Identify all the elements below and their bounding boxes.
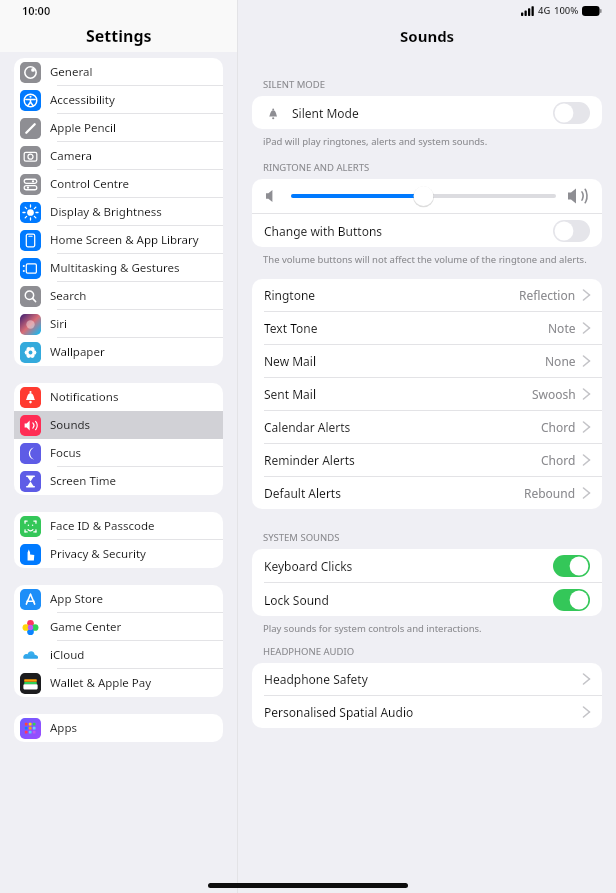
staticText: Default Alerts <box>264 485 341 501</box>
button[interactable]: Silent Mode <box>252 96 602 129</box>
staticText: iPad will play ringtones, alerts and sys… <box>263 135 488 148</box>
staticText: Swoosh <box>532 386 576 402</box>
button[interactable]: Apple Pencil <box>14 114 223 142</box>
button[interactable]: Ringtone <box>252 279 602 311</box>
staticText: 100% <box>554 4 579 17</box>
staticText: Wallpaper <box>50 344 105 360</box>
staticText: Reflection <box>519 287 576 303</box>
staticText: Screen Time <box>50 473 117 489</box>
button[interactable]: Notifications <box>14 383 223 411</box>
staticText: Home Screen & App Library <box>50 232 199 248</box>
staticText: Wallet & Apple Pay <box>50 675 152 691</box>
button[interactable]: Wallpaper <box>14 338 223 366</box>
staticText: Note <box>548 320 576 336</box>
button[interactable]: Camera <box>14 142 223 170</box>
staticText: Game Center <box>50 619 122 635</box>
button[interactable]: Apps <box>14 714 223 742</box>
staticText: Headphone Safety <box>264 671 368 687</box>
button[interactable]: Game Center <box>14 613 223 641</box>
staticText: Sounds <box>50 417 91 433</box>
staticText: Multitasking & Gestures <box>50 260 180 276</box>
staticText: Face ID & Passcode <box>50 518 155 534</box>
staticText: Search <box>50 288 87 304</box>
button[interactable]: Wallet & Apple Pay <box>14 669 223 697</box>
button[interactable]: Face ID & Passcode <box>14 512 223 540</box>
button[interactable]: App Store <box>14 585 223 613</box>
staticText: Ringtone <box>264 287 316 303</box>
button[interactable]: Search <box>14 282 223 310</box>
staticText: New Mail <box>264 353 317 369</box>
staticText: Calendar Alerts <box>264 419 351 435</box>
staticText: Chord <box>541 452 576 468</box>
button[interactable]: Focus <box>14 439 223 467</box>
button[interactable]: Accessibility <box>14 86 223 114</box>
staticText: The volume buttons will not affect the v… <box>263 253 587 266</box>
button[interactable]: Display & Brightness <box>14 198 223 226</box>
staticText: Play sounds for system controls and inte… <box>263 622 482 635</box>
staticText: Reminder Alerts <box>264 452 355 468</box>
button[interactable]: Calendar Alerts <box>252 411 602 443</box>
button[interactable]: Default Alerts <box>252 477 602 509</box>
button[interactable]: Headphone Safety <box>252 663 602 695</box>
staticText: Focus <box>50 445 82 461</box>
staticText: RINGTONE AND ALERTS <box>263 161 370 174</box>
button[interactable]: Change with Buttons <box>252 214 602 247</box>
staticText: Siri <box>50 316 67 332</box>
button[interactable]: iCloud <box>14 641 223 669</box>
staticText: General <box>50 64 93 80</box>
button[interactable]: Lock Sound <box>252 583 602 616</box>
staticText: 4G <box>538 4 551 17</box>
button[interactable]: General <box>14 58 223 86</box>
staticText: Accessibility <box>50 92 115 108</box>
button[interactable]: Home Screen & App Library <box>14 226 223 254</box>
button[interactable]: Sounds <box>14 411 223 439</box>
staticText: Sounds <box>400 26 455 46</box>
button[interactable]: Text Tone <box>252 312 602 344</box>
staticText: Keyboard Clicks <box>264 558 353 574</box>
staticText: Rebound <box>524 485 576 501</box>
staticText: HEADPHONE AUDIO <box>263 645 355 658</box>
staticText: Camera <box>50 148 92 164</box>
staticText: Apps <box>50 720 78 736</box>
button[interactable]: Personalised Spatial Audio <box>252 696 602 728</box>
button[interactable]: Siri <box>14 310 223 338</box>
staticText: Display & Brightness <box>50 204 162 220</box>
button[interactable]: Reminder Alerts <box>252 444 602 476</box>
button[interactable]: Keyboard Clicks <box>252 549 602 582</box>
staticText: None <box>545 353 576 369</box>
staticText: SYSTEM SOUNDS <box>263 531 340 544</box>
staticText: Personalised Spatial Audio <box>264 704 414 720</box>
staticText: Apple Pencil <box>50 120 116 136</box>
button[interactable]: Sent Mail <box>252 378 602 410</box>
button[interactable]: New Mail <box>252 345 602 377</box>
staticText: Lock Sound <box>264 592 329 608</box>
staticText: Privacy & Security <box>50 546 146 562</box>
staticText: Chord <box>541 419 576 435</box>
button[interactable]: Privacy & Security <box>14 540 223 568</box>
staticText: Change with Buttons <box>264 223 383 239</box>
staticText: Silent Mode <box>292 105 359 121</box>
button[interactable]: Screen Time <box>14 467 223 495</box>
button[interactable]: Multitasking & Gestures <box>14 254 223 282</box>
staticText: SILENT MODE <box>263 78 325 91</box>
staticText: Notifications <box>50 389 119 405</box>
staticText: Control Centre <box>50 176 129 192</box>
staticText: App Store <box>50 591 103 607</box>
staticText: iCloud <box>50 647 85 663</box>
button[interactable]: Control Centre <box>14 170 223 198</box>
staticText: Text Tone <box>264 320 318 336</box>
staticText: Sent Mail <box>264 386 317 402</box>
staticText: 10:00 <box>22 3 51 18</box>
staticText: Settings <box>86 25 152 47</box>
